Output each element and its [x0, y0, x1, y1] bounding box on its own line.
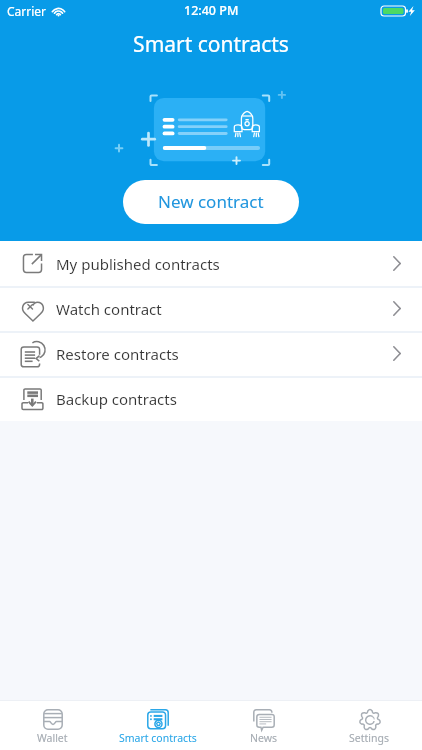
- button[interactable]: Settings: [316, 708, 422, 750]
- staticText: Wallet: [37, 731, 68, 745]
- button[interactable]: News: [210, 708, 316, 750]
- button[interactable]: New contract: [123, 180, 299, 224]
- button[interactable]: Watch contract: [0, 286, 422, 331]
- staticText: Restore contracts: [56, 344, 179, 364]
- staticText: Smart contracts: [119, 731, 197, 745]
- staticText: Settings: [349, 731, 389, 745]
- staticText: Carrier: [7, 3, 47, 19]
- staticText: My published contracts: [56, 254, 220, 274]
- staticText: New contract: [158, 190, 264, 213]
- button[interactable]: Smart contracts: [105, 708, 210, 750]
- staticText: Backup contracts: [56, 389, 177, 409]
- button[interactable]: My published contracts: [0, 241, 422, 286]
- button[interactable]: Wallet: [0, 708, 105, 750]
- staticText: 12:40 PM: [184, 2, 239, 19]
- staticText: Smart contracts: [0, 30, 422, 59]
- staticText: News: [250, 731, 277, 745]
- button[interactable]: Restore contracts: [0, 331, 422, 376]
- button[interactable]: Backup contracts: [0, 376, 422, 421]
- staticText: Watch contract: [56, 299, 162, 319]
